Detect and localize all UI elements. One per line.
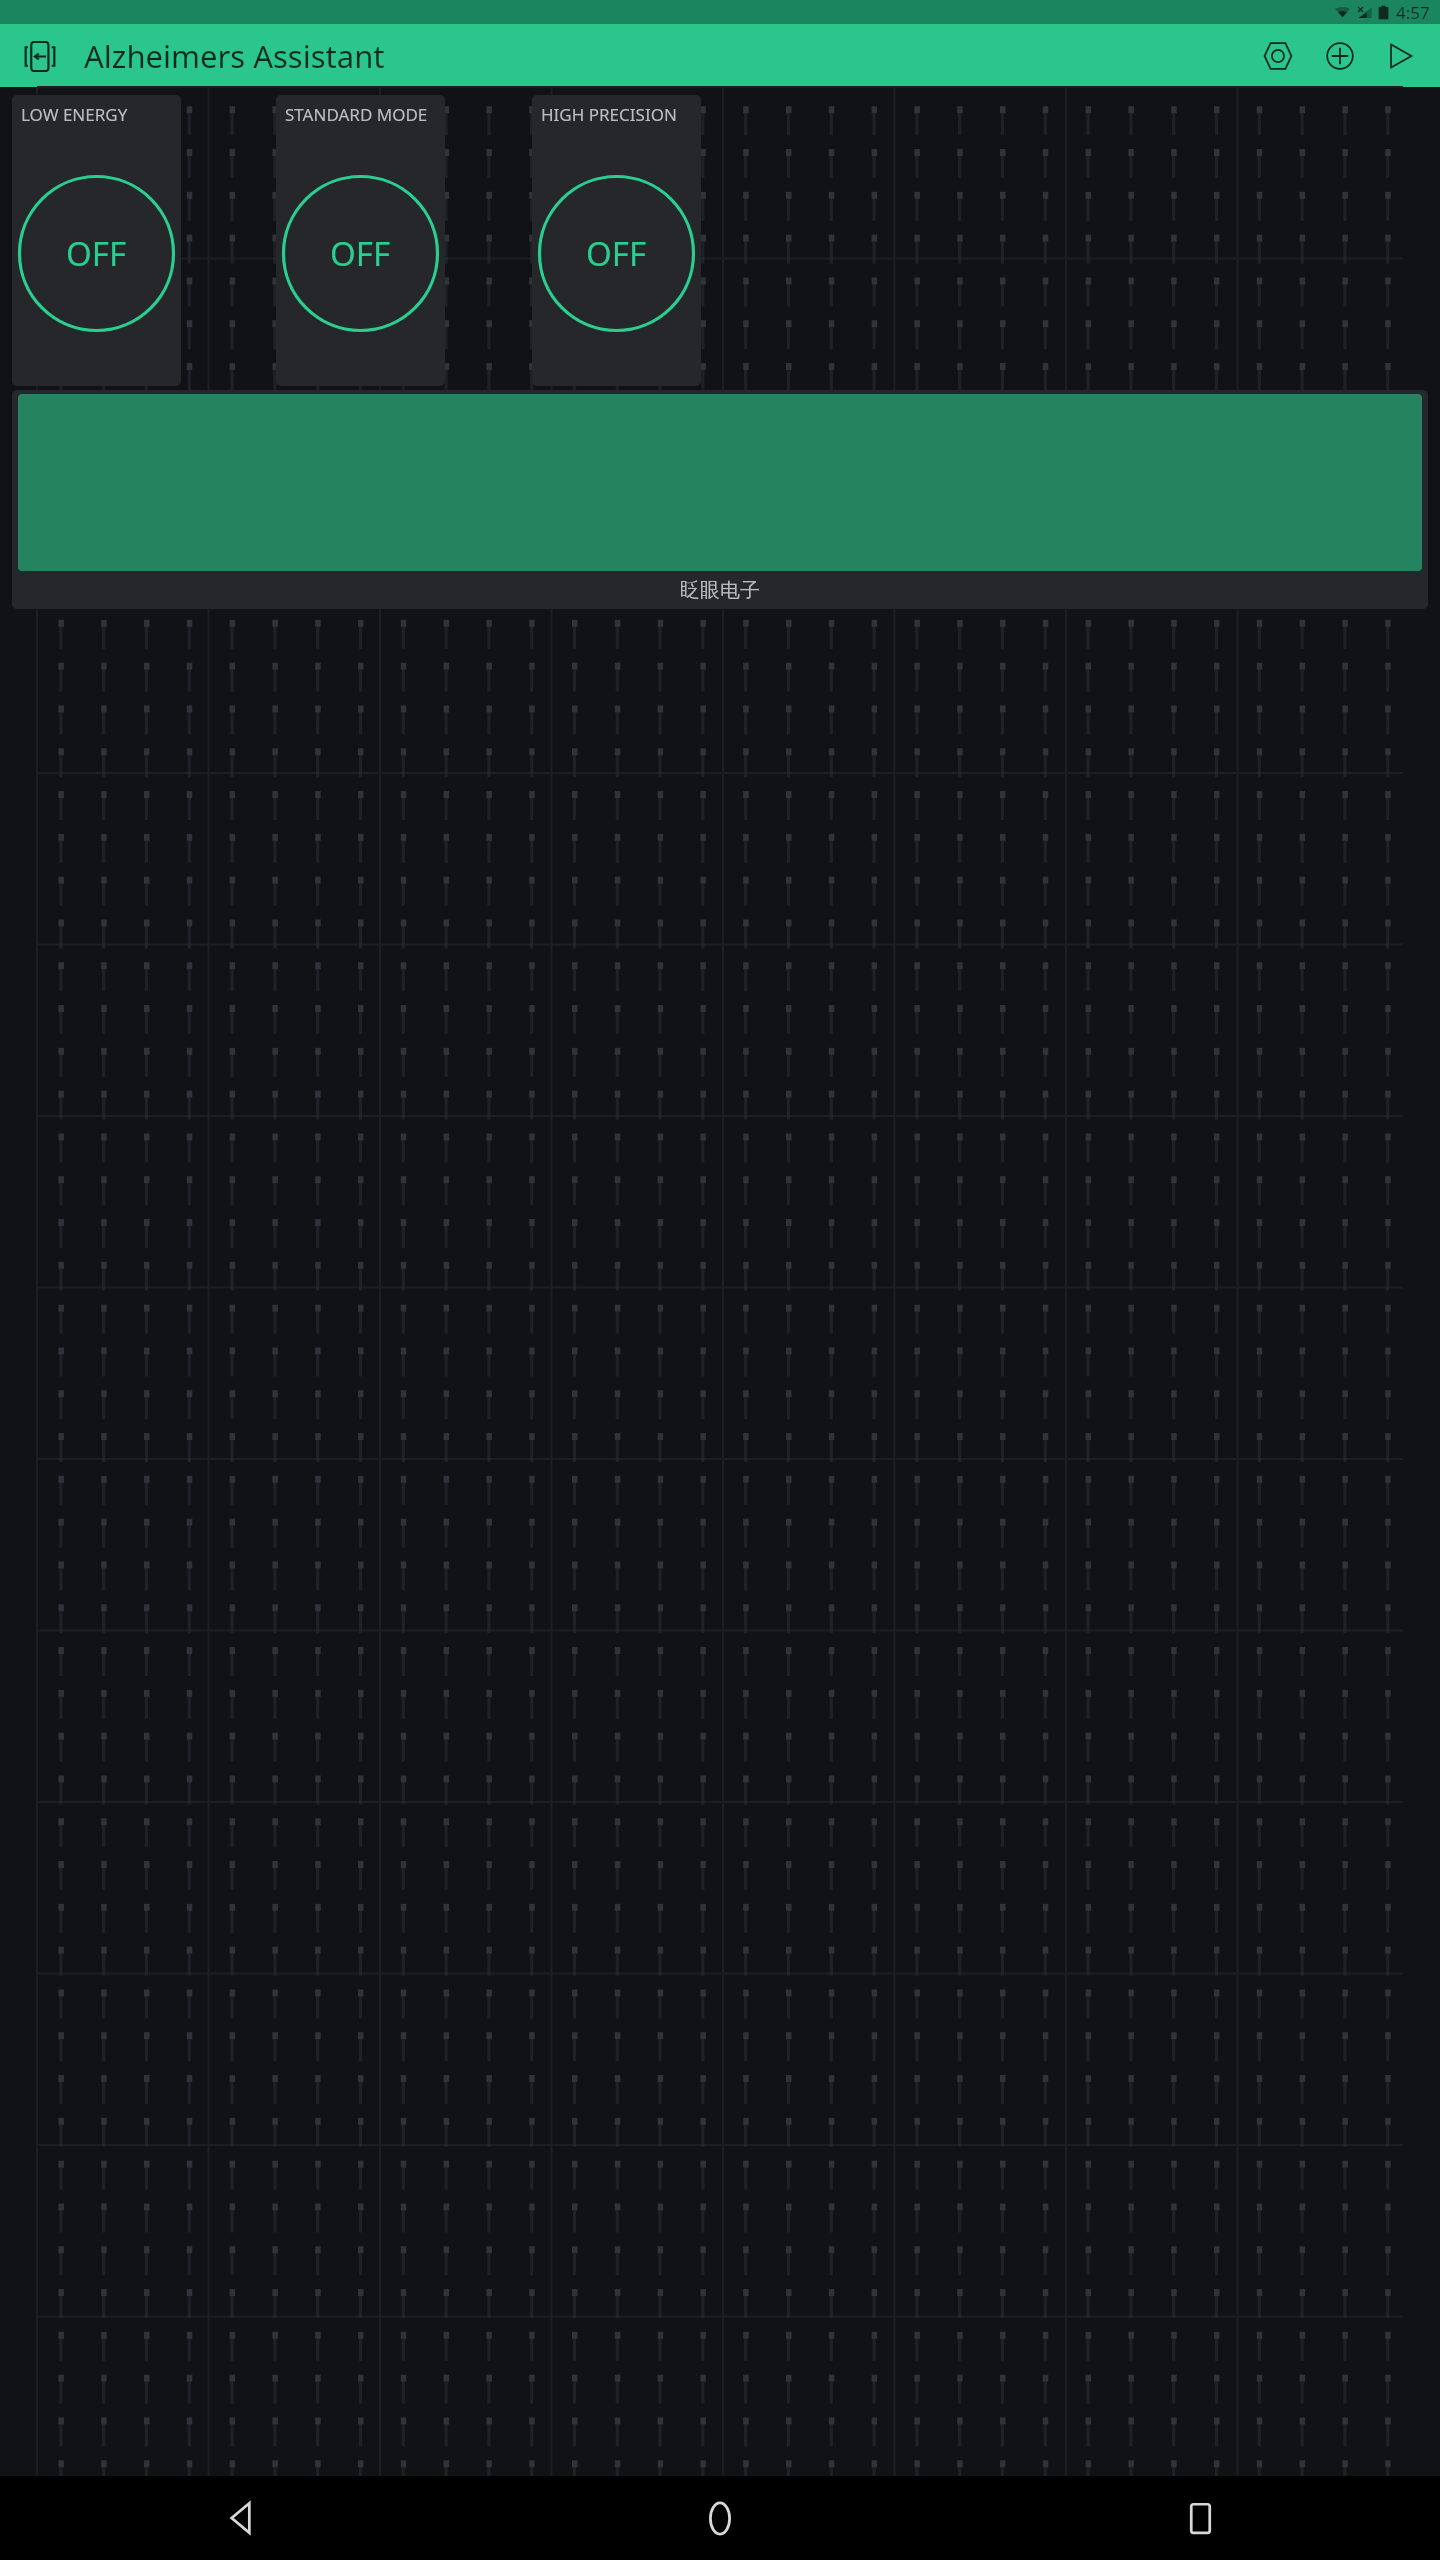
staticText: HIGH PRECISION xyxy=(541,103,677,126)
button[interactable]: 眨眼电子 xyxy=(12,390,1428,609)
button[interactable]: Back xyxy=(16,32,64,80)
button[interactable]: Back xyxy=(210,2488,270,2548)
staticText: LOW ENERGY xyxy=(21,103,128,126)
button[interactable]: Home xyxy=(690,2488,750,2548)
button[interactable]: HIGH PRECISION xyxy=(532,95,701,386)
staticText: 眨眼电子 xyxy=(680,578,760,603)
button[interactable]: Recents xyxy=(1170,2488,1230,2548)
staticText: STANDARD MODE xyxy=(285,103,428,126)
button[interactable]: LOW ENERGY xyxy=(12,95,181,386)
staticText: OFF xyxy=(586,231,647,276)
button[interactable]: Settings xyxy=(1252,30,1304,82)
staticText: 4:57 xyxy=(1396,1,1430,24)
button[interactable]: Add xyxy=(1314,30,1366,82)
staticText: OFF xyxy=(330,231,391,276)
staticText: Alzheimers Assistant xyxy=(84,35,385,77)
button[interactable]: STANDARD MODE xyxy=(276,95,445,386)
button[interactable]: Run xyxy=(1374,30,1426,82)
staticText: OFF xyxy=(66,231,127,276)
